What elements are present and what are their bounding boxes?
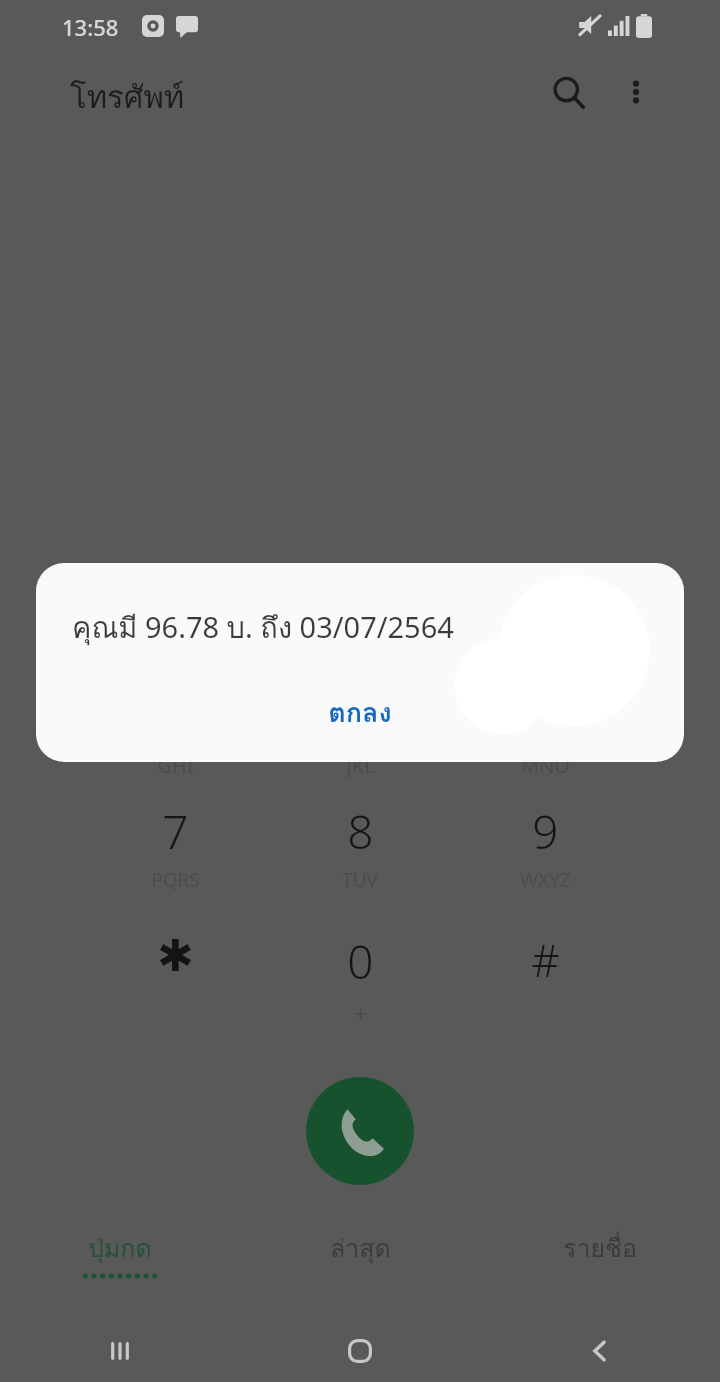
- button[interactable]: Call: [306, 1077, 414, 1185]
- staticText: PQRS: [151, 867, 200, 893]
- staticText: ตกลง: [328, 691, 392, 734]
- button[interactable]: รายชื่อ: [480, 1228, 720, 1306]
- button[interactable]: Home: [240, 1320, 480, 1382]
- staticText: 9: [532, 800, 559, 863]
- staticText: +: [354, 997, 367, 1027]
- staticText: MNO: [521, 752, 570, 779]
- staticText: WXYZ: [520, 867, 571, 893]
- button[interactable]: #: [453, 930, 637, 1056]
- button[interactable]: 0: [268, 930, 452, 1056]
- button[interactable]: Back: [480, 1320, 720, 1382]
- staticText: โทรศัพท์: [70, 72, 185, 121]
- staticText: 7: [162, 800, 189, 863]
- button[interactable]: ✱: [83, 930, 267, 1056]
- staticText: JKL: [346, 752, 375, 779]
- button[interactable]: More options: [606, 62, 666, 122]
- staticText: ล่าสุด: [330, 1228, 391, 1268]
- staticText: คุณมี 96.78 บ. ถึง 03/07/2564: [72, 605, 454, 651]
- staticText: #: [531, 930, 560, 990]
- button[interactable]: ตกลง: [36, 681, 684, 743]
- staticText: 0: [347, 930, 374, 993]
- button[interactable]: 8: [268, 800, 452, 926]
- staticText: ปุ่มกด: [88, 1228, 152, 1268]
- staticText: 13:58: [62, 12, 119, 42]
- button[interactable]: 9: [453, 800, 637, 926]
- staticText: รายชื่อ: [563, 1228, 638, 1268]
- button[interactable]: Recents: [0, 1320, 240, 1382]
- staticText: 8: [347, 800, 374, 863]
- staticText: ✱: [157, 930, 194, 981]
- button[interactable]: ล่าสุด: [240, 1228, 480, 1306]
- button[interactable]: Search: [538, 62, 600, 124]
- button[interactable]: ปุ่มกด: [0, 1228, 240, 1306]
- staticText: TUV: [342, 867, 378, 893]
- button[interactable]: 7: [83, 800, 267, 926]
- staticText: GHI: [157, 752, 194, 779]
